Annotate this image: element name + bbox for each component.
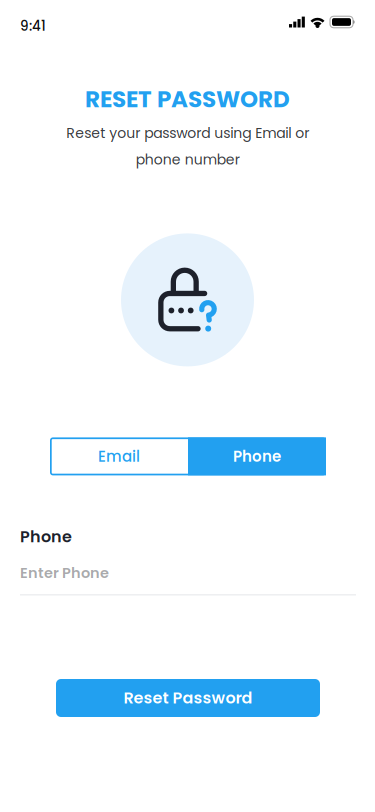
staticText: Reset your password using Email or phone… [66, 123, 309, 169]
button[interactable]: Phone [188, 437, 326, 475]
button[interactable]: Reset Password [56, 679, 320, 717]
staticText: Phone [20, 525, 72, 548]
staticText: Enter Phone [20, 563, 109, 583]
staticText: Reset Password [123, 687, 252, 709]
button[interactable]: Email [50, 437, 188, 475]
staticText: RESET PASSWORD [85, 83, 290, 115]
staticText: Email [98, 446, 140, 467]
staticText: 9:41 [20, 17, 46, 35]
staticText: Phone [233, 446, 281, 467]
